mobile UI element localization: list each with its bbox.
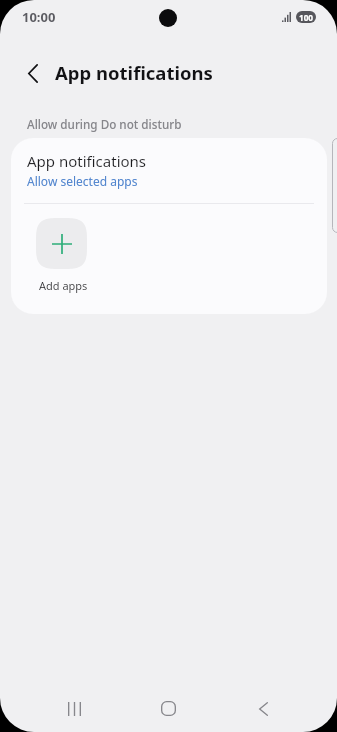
staticText: 100 — [299, 12, 314, 23]
button[interactable]: Back — [241, 686, 286, 731]
staticText: Allow selected apps — [27, 173, 138, 189]
staticText: Allow during Do not disturb — [27, 116, 182, 132]
staticText: Add apps — [39, 278, 88, 293]
staticText: App notifications — [55, 60, 213, 85]
staticText: 10:00 — [22, 8, 56, 26]
button[interactable]: Back — [14, 55, 51, 92]
button[interactable]: Add apps — [36, 218, 87, 293]
button[interactable]: Home — [146, 686, 191, 731]
staticText: App notifications — [27, 151, 147, 171]
button[interactable]: Recent apps — [52, 686, 97, 731]
